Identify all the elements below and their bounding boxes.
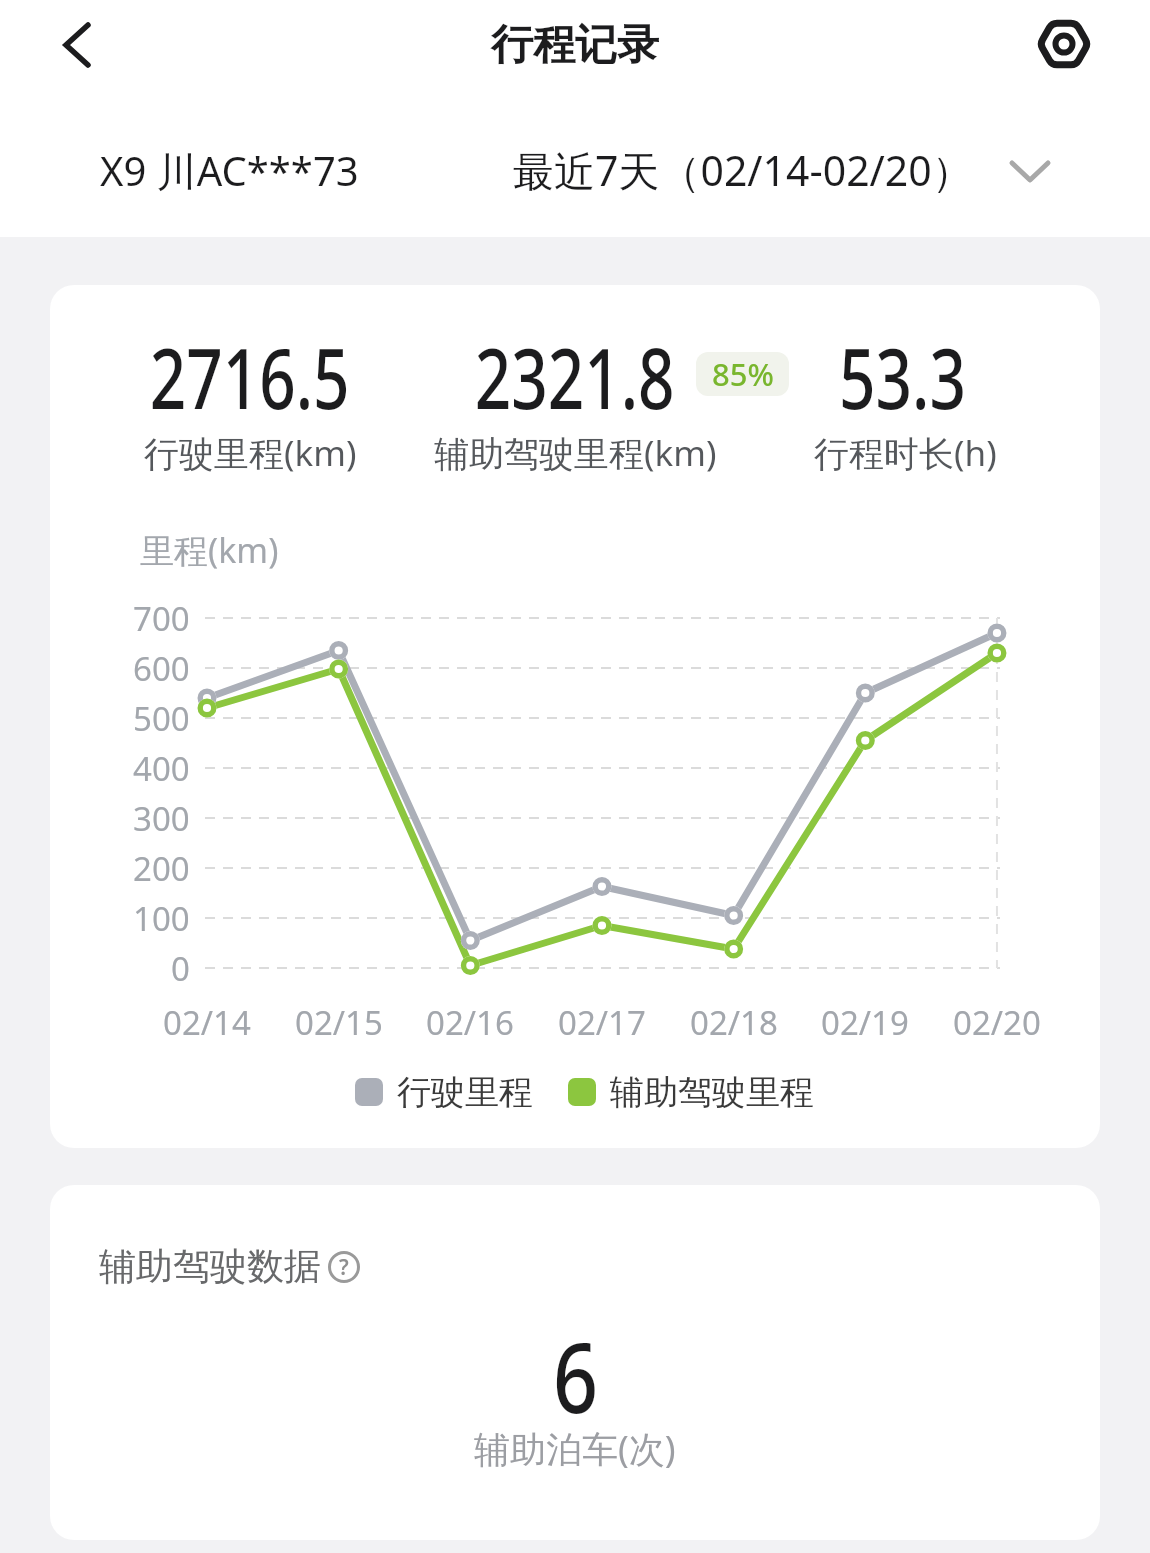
button[interactable]: 最近7天（02/14-02/20）	[513, 130, 973, 210]
staticText: 行程时长(h)	[814, 429, 997, 477]
staticText: 500	[133, 696, 190, 741]
staticText: 6	[553, 1310, 598, 1430]
staticText: 600	[133, 646, 190, 691]
button[interactable]: X9 川AC***73	[100, 130, 359, 210]
staticText: 行驶里程	[397, 1071, 533, 1114]
staticText: 辅助驾驶里程	[610, 1071, 814, 1114]
staticText: 行程记录	[491, 19, 659, 72]
staticText: 行驶里程(km)	[144, 429, 357, 477]
staticText: 02/17	[558, 1000, 646, 1045]
staticText: 辅助驾驶数据	[99, 1243, 321, 1290]
staticText: 最近7天（02/14-02/20）	[513, 142, 973, 198]
staticText: 200	[133, 846, 190, 891]
staticText: 100	[133, 896, 190, 941]
staticText: ?	[339, 1253, 349, 1282]
staticText: 辅助泊车(次)	[474, 1424, 676, 1473]
staticText: 辅助驾驶里程(km)	[434, 429, 717, 477]
button[interactable]	[50, 15, 110, 75]
staticText: 02/14	[163, 1000, 251, 1045]
staticText: 02/19	[821, 1000, 909, 1045]
staticText: 700	[133, 596, 190, 641]
staticText: 400	[133, 746, 190, 791]
staticText: 2321.8	[475, 319, 675, 433]
button[interactable]	[1030, 14, 1098, 74]
staticText: 2716.5	[150, 319, 350, 433]
staticText: 53.3	[839, 319, 966, 433]
staticText: 02/18	[690, 1000, 778, 1045]
staticText: 02/16	[426, 1000, 514, 1045]
staticText: 里程(km)	[140, 527, 279, 573]
staticText: X9 川AC***73	[100, 143, 359, 198]
staticText: 02/15	[295, 1000, 383, 1045]
staticText: 85%	[712, 353, 774, 395]
staticText: 02/20	[953, 1000, 1041, 1045]
staticText: 0	[171, 946, 190, 991]
staticText: 300	[133, 796, 190, 841]
button[interactable]: ?	[24, 1207, 664, 1327]
